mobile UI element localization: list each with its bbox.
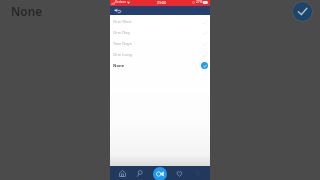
staticText: None: [113, 63, 125, 69]
button[interactable]: Record video: [153, 167, 167, 180]
button[interactable]: One Long: [110, 49, 210, 60]
button[interactable]: One Shot: [110, 16, 210, 27]
staticText: One Long: [113, 52, 133, 58]
staticText: 27%: [196, 0, 203, 4]
button[interactable]: Search: [134, 167, 147, 180]
staticText: One Shot: [113, 19, 132, 25]
staticText: One Day: [113, 30, 130, 36]
staticText: 21:04: [157, 0, 166, 5]
button[interactable]: Notifications: [173, 167, 186, 180]
button[interactable]: None: [110, 60, 210, 71]
staticText: None: [11, 3, 43, 19]
button[interactable]: One Day: [110, 27, 210, 38]
staticText: Two Days: [113, 41, 132, 47]
button[interactable]: Home: [116, 167, 129, 180]
button[interactable]: Two Days: [110, 38, 210, 49]
button[interactable]: Confirm: [292, 1, 313, 22]
button[interactable]: Back: [110, 6, 124, 15]
staticText: Verizon: [115, 0, 127, 4]
